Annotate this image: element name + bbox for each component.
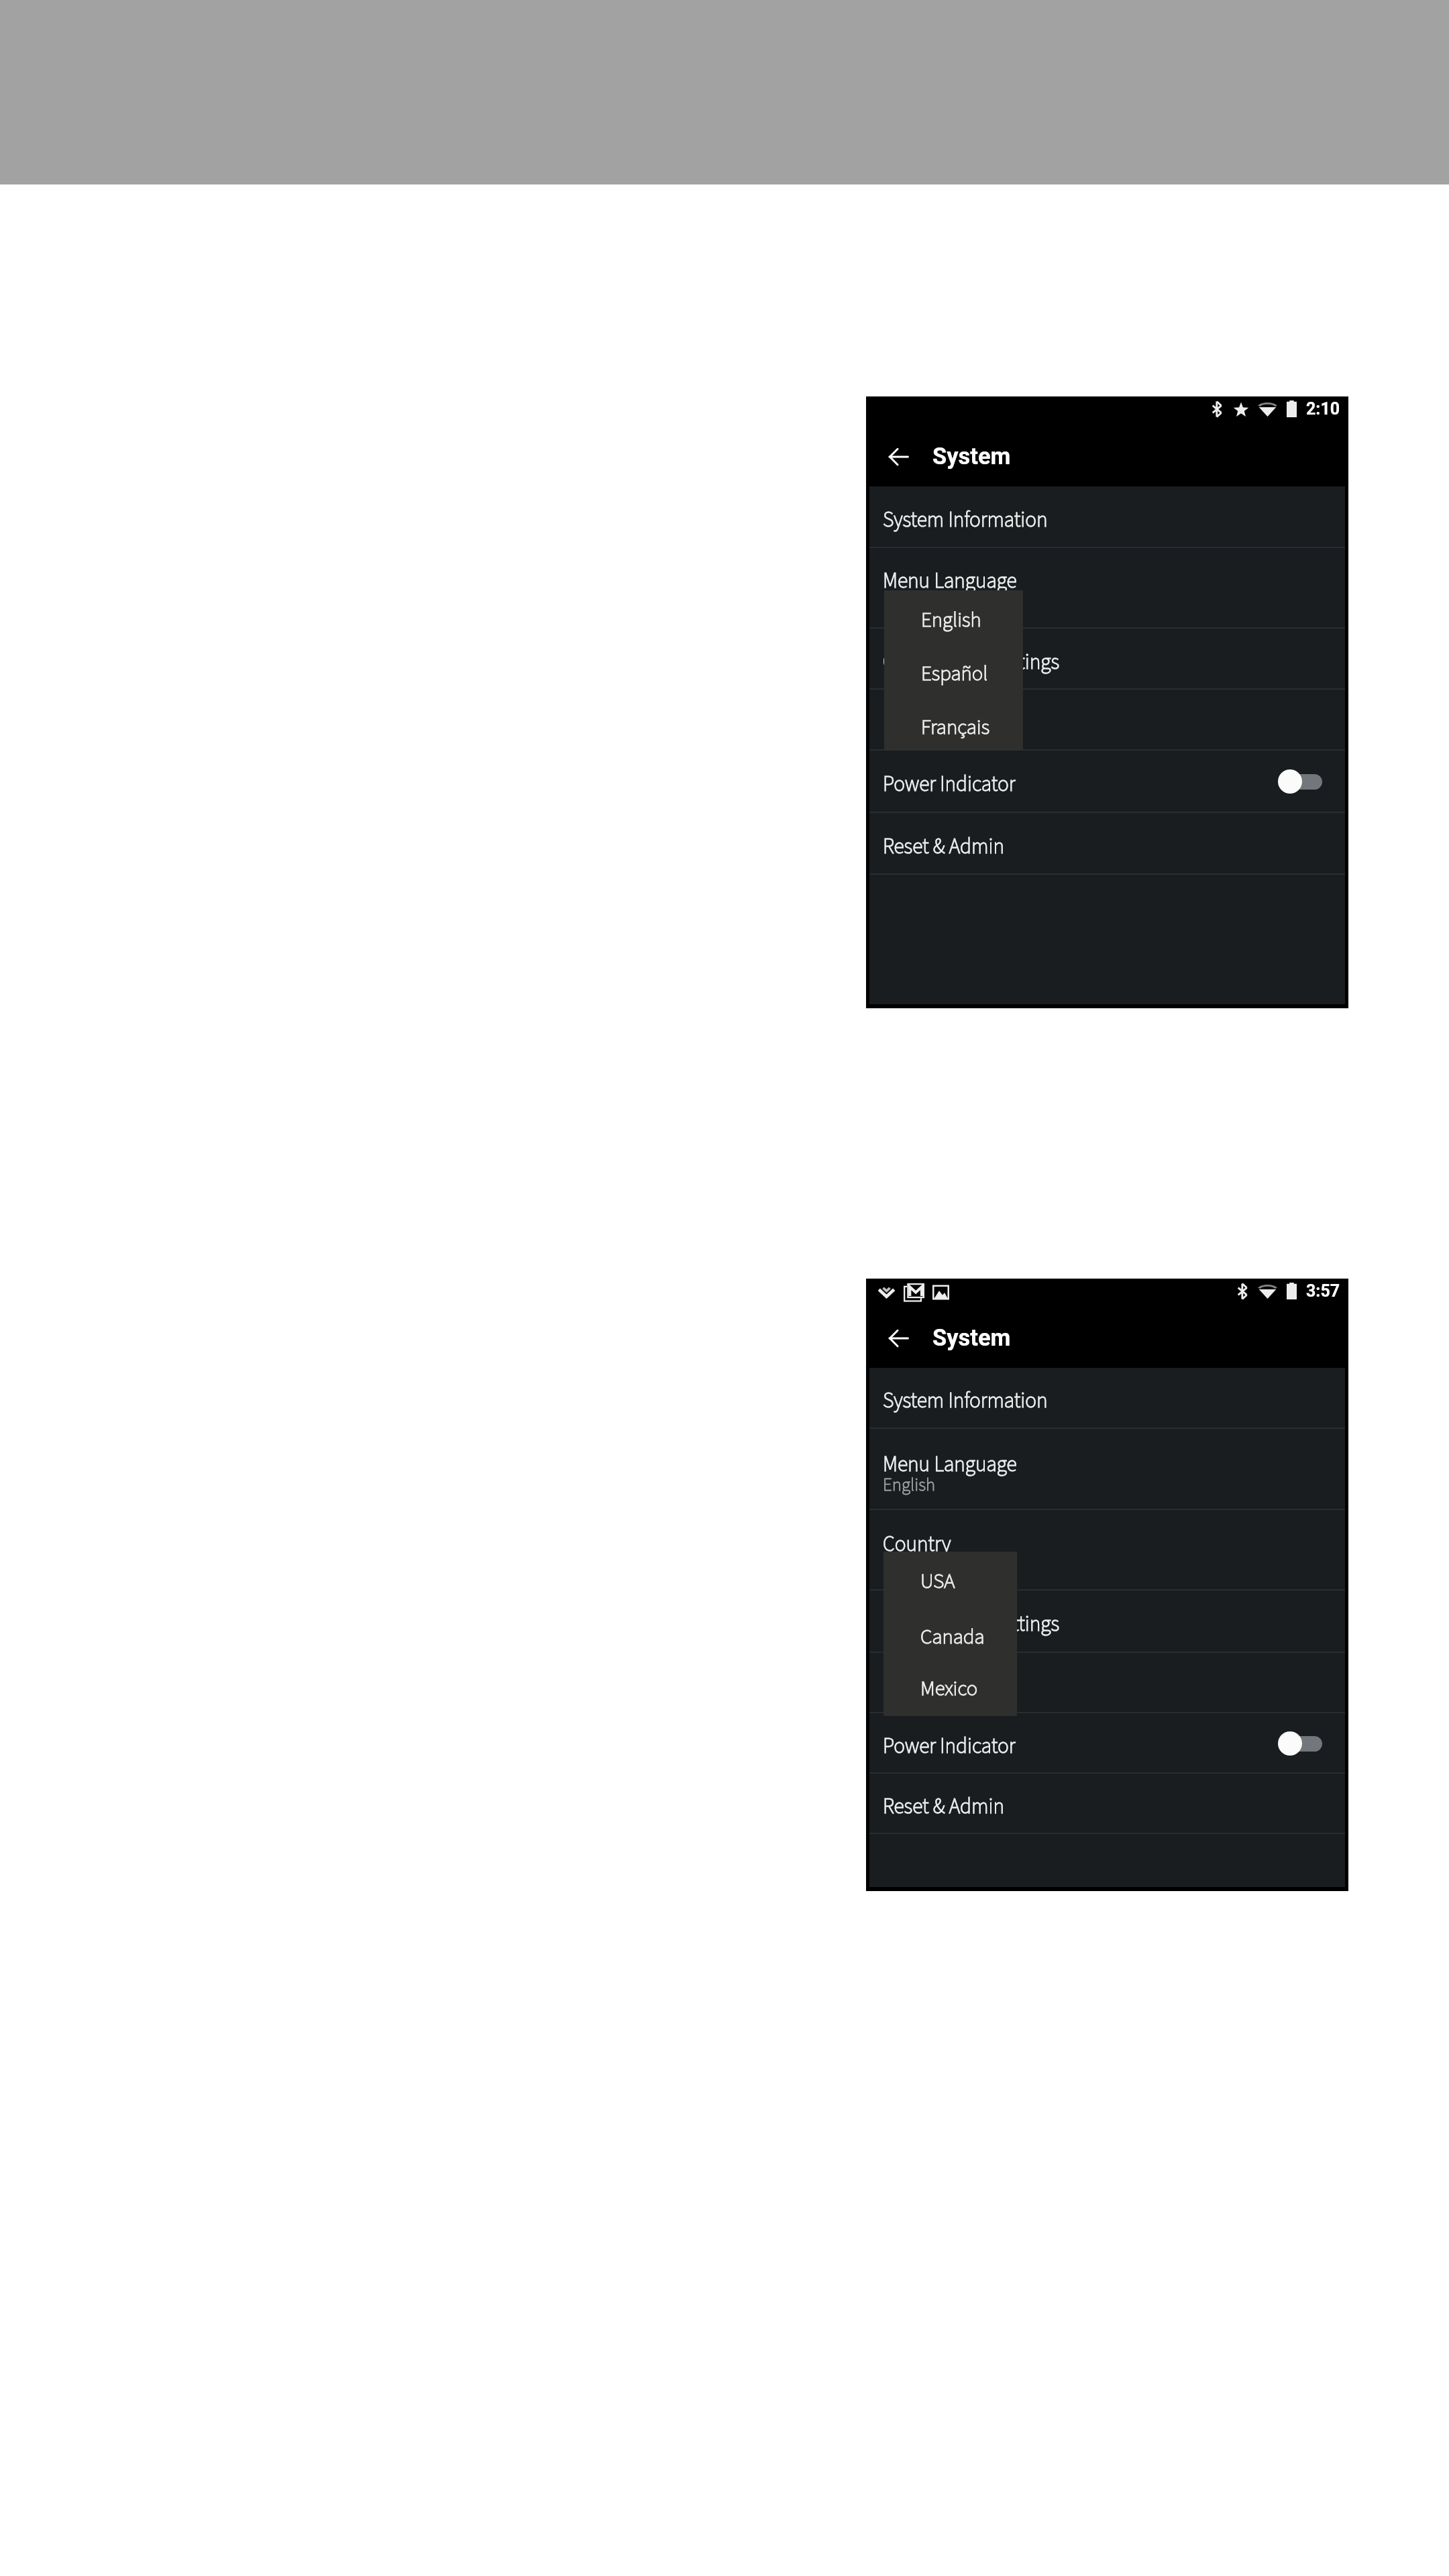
staticText: 3:57 [1306, 1281, 1340, 1301]
staticText: Canada [920, 1622, 985, 1652]
staticText: Connectivity Settings [883, 1609, 1060, 1640]
button[interactable]: Connectivity Settings [869, 629, 1345, 690]
button[interactable]: Back [881, 1321, 916, 1356]
staticText: 2:10 [1306, 399, 1340, 419]
staticText: Español [921, 659, 988, 688]
button[interactable]: USA [883, 1552, 1017, 1605]
button[interactable]: Power Indicator toggle [1278, 768, 1322, 795]
staticText: English [921, 605, 981, 635]
staticText: System [932, 1324, 1011, 1351]
button[interactable]: Back [881, 439, 916, 474]
button[interactable]: Power Indicator [869, 1713, 1345, 1774]
button[interactable]: Reset & Admin [869, 1774, 1345, 1834]
staticText: Mexico [920, 1674, 978, 1703]
button[interactable]: Mexico [883, 1659, 1017, 1713]
staticText: Connectivity Settings [883, 647, 1060, 678]
button[interactable]: Reset & Admin [869, 813, 1345, 875]
button[interactable]: System Information [869, 1368, 1345, 1429]
staticText: Menu Language [883, 566, 1017, 596]
staticText: Display [883, 1671, 945, 1701]
staticText: Reset & Admin [883, 832, 1005, 862]
staticText: USA [920, 1566, 955, 1596]
staticText: System [932, 443, 1011, 470]
staticText: Country [883, 1529, 951, 1560]
button[interactable]: Display [869, 690, 1345, 751]
button[interactable]: Country [869, 1510, 1345, 1591]
staticText: English [883, 1472, 936, 1497]
staticText: Menu Language [883, 1450, 1017, 1480]
button[interactable]: Español [884, 644, 1023, 698]
button[interactable]: Display [869, 1653, 1345, 1713]
staticText: Reset & Admin [883, 1792, 1005, 1822]
staticText: Français [921, 712, 990, 742]
staticText: System Information [883, 1386, 1048, 1416]
button[interactable]: Menu Language [869, 1429, 1345, 1510]
button[interactable]: Canada [883, 1607, 1017, 1661]
staticText: Power Indicator [883, 769, 1016, 800]
button[interactable]: Menu Language [869, 548, 1345, 629]
staticText: Display [883, 709, 945, 739]
staticText: System Information [883, 505, 1048, 535]
button[interactable]: Power Indicator toggle [1278, 1730, 1322, 1757]
button[interactable]: System Information [869, 486, 1345, 548]
button[interactable]: English [884, 590, 1023, 644]
button[interactable]: Français [884, 698, 1023, 751]
staticText: Power Indicator [883, 1731, 1016, 1762]
button[interactable]: Power Indicator [869, 751, 1345, 813]
button[interactable]: Connectivity Settings [869, 1591, 1345, 1653]
